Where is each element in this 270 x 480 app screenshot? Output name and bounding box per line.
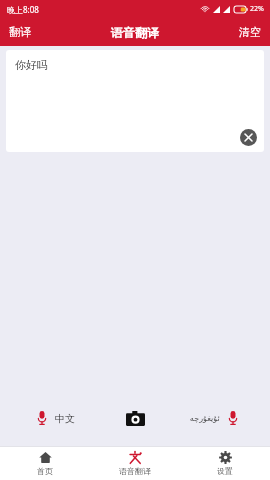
button[interactable]: 你好吗 (6, 50, 264, 152)
button[interactable]: 拍照翻译 (113, 398, 157, 438)
staticText: 22% (250, 4, 264, 14)
button[interactable]: ئۇيغۇرچە (157, 398, 270, 438)
staticText: 翻译 (9, 25, 31, 39)
button[interactable]: 清除文本 (240, 129, 257, 146)
button[interactable]: 设置 (180, 447, 270, 480)
staticText: 语音翻译 (119, 466, 151, 476)
staticText: 语音翻译 (111, 25, 159, 40)
staticText: 首页 (37, 466, 53, 476)
staticText: ئۇيغۇرچە (190, 414, 220, 423)
button[interactable]: 清空 (230, 18, 270, 46)
staticText: 中文 (55, 412, 75, 425)
staticText: 清空 (239, 25, 261, 39)
staticText: 晚上8:08 (7, 4, 39, 15)
button[interactable]: 翻译 (0, 18, 40, 46)
button[interactable]: 中文 (0, 398, 113, 438)
button[interactable]: 首页 (0, 447, 90, 480)
staticText: 你好吗 (15, 58, 48, 72)
button[interactable]: 语音翻译 (90, 447, 180, 480)
staticText: 设置 (217, 466, 233, 476)
